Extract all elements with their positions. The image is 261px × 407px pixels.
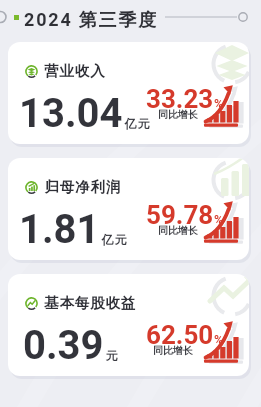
staticText: 基本每股收益 bbox=[44, 294, 137, 312]
staticText: % bbox=[214, 96, 216, 111]
staticText: 1.81 bbox=[19, 206, 100, 253]
staticText: % bbox=[214, 332, 216, 347]
staticText: 2024 第三季度 bbox=[24, 9, 158, 32]
staticText: 同比增长 bbox=[153, 344, 193, 357]
staticText: 归母净利润 bbox=[44, 178, 121, 196]
staticText: 同比增长 bbox=[158, 108, 198, 121]
button[interactable]: 归母净利润 bbox=[8, 158, 249, 260]
staticText: 62.50 bbox=[146, 320, 214, 350]
staticText: % bbox=[214, 212, 216, 227]
staticText: 亿元 bbox=[124, 116, 150, 131]
staticText: 59.78 bbox=[146, 200, 214, 230]
staticText: 亿元 bbox=[101, 232, 127, 247]
staticText: 营业收入 bbox=[44, 62, 106, 80]
staticText: 元 bbox=[105, 348, 118, 363]
staticText: 33.23 bbox=[146, 84, 214, 114]
staticText: 同比增长 bbox=[158, 224, 198, 237]
staticText: 0.39 bbox=[23, 322, 104, 369]
button[interactable]: 营业收入 bbox=[8, 42, 249, 144]
button[interactable]: 基本每股收益 bbox=[8, 274, 249, 376]
staticText: 13.04 bbox=[19, 90, 123, 137]
